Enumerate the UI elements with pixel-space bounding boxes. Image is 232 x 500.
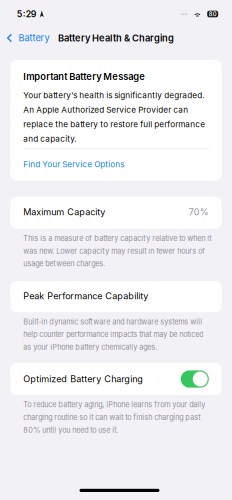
staticText: Built-in dynamic software and hardware s…: [23, 317, 203, 351]
staticText: Your battery's health is significantly d…: [23, 90, 205, 144]
button[interactable]: Maximum Capacity: [0, 197, 221, 229]
button[interactable]: Peak Performance Capability: [0, 281, 221, 312]
staticText: Important Battery Message: [23, 71, 145, 82]
staticText: This is a measure of battery capacity re…: [23, 234, 211, 268]
button[interactable]: Optimized Battery Charging: [181, 370, 209, 388]
staticText: 5:29: [17, 9, 37, 19]
staticText: To reduce battery aging, iPhone learns f…: [23, 400, 205, 434]
button[interactable]: Find Your Service Options: [23, 149, 209, 181]
staticText: Battery: [18, 32, 49, 43]
staticText: Peak Performance Capability: [23, 290, 148, 301]
staticText: 70%: [189, 206, 209, 217]
staticText: 80: [209, 10, 217, 18]
staticText: Optimized Battery Charging: [23, 373, 143, 384]
staticText: Battery Health & Charging: [58, 32, 174, 44]
staticText: Maximum Capacity: [23, 206, 105, 217]
button[interactable]: Battery: [0, 28, 55, 48]
staticText: Find Your Service Options: [23, 159, 124, 169]
